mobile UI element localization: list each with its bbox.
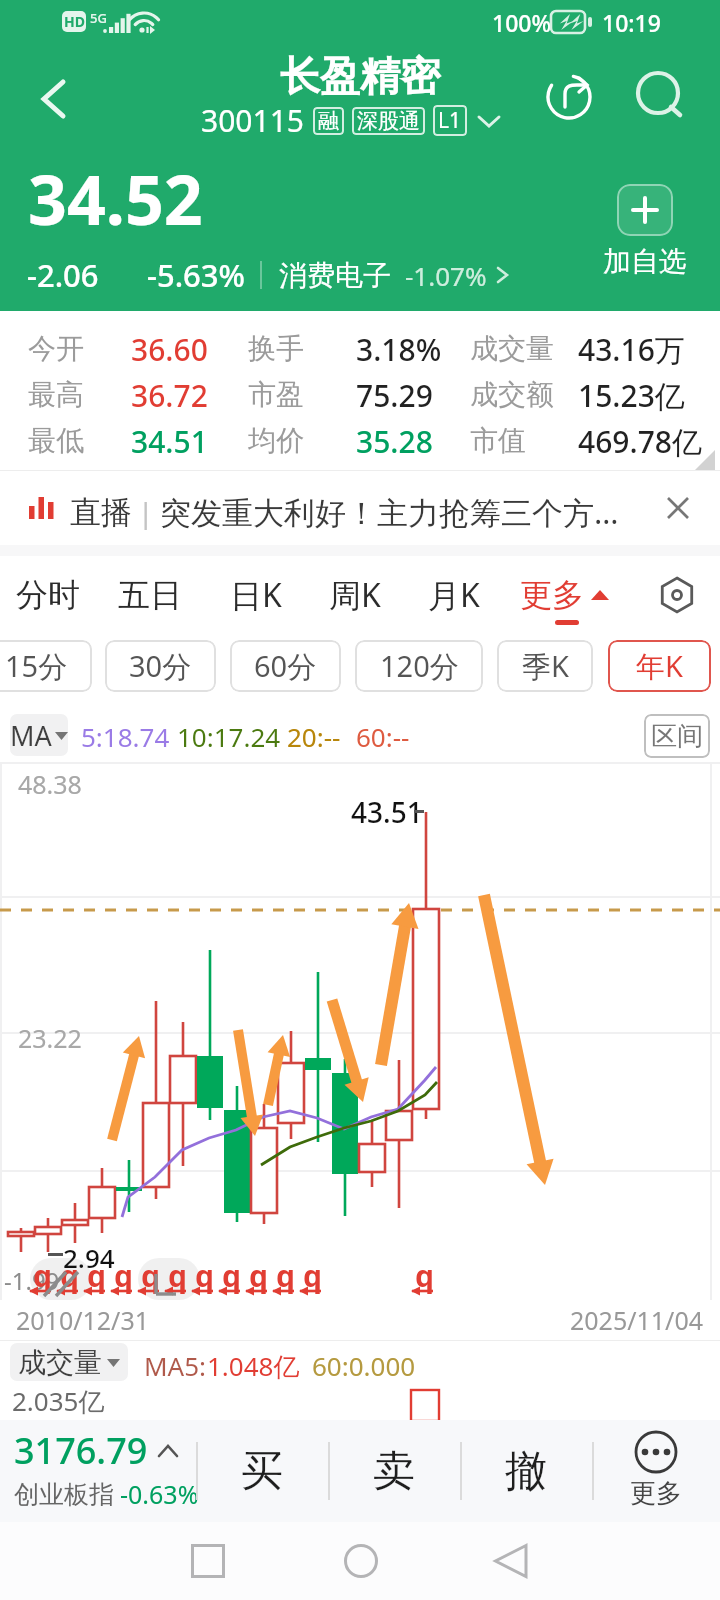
button[interactable]: 直播 (0, 471, 720, 545)
staticText: 今开 (28, 331, 84, 366)
button[interactable]: 周K (310, 556, 400, 634)
button[interactable]: 年K (608, 640, 711, 692)
staticText: 2.035亿 (12, 1383, 105, 1419)
staticText: 月K (428, 573, 480, 617)
button[interactable]: Search (632, 68, 690, 126)
staticText: 43.16万 (578, 329, 685, 370)
staticText: q (168, 1255, 187, 1296)
staticText: 48.38 (18, 767, 82, 801)
button[interactable]: Recent apps (148, 1522, 268, 1600)
staticText: 市值 (470, 423, 526, 458)
button[interactable]: Home (301, 1522, 421, 1600)
staticText: 成交量 (18, 1345, 102, 1380)
button[interactable]: 月K (409, 556, 499, 634)
staticText: q (141, 1255, 160, 1296)
staticText: 更多 (630, 1477, 682, 1510)
button[interactable]: 3176.79 (0, 1420, 196, 1522)
staticText: 最低 (28, 423, 84, 458)
staticText: 融 (318, 108, 339, 134)
staticText: q (195, 1255, 214, 1296)
staticText: L1 (438, 106, 462, 135)
staticText: MA (10, 717, 52, 754)
staticText: q (33, 1255, 52, 1296)
staticText: -5.63% (147, 254, 245, 296)
staticText: q (276, 1255, 295, 1296)
staticText: q (60, 1255, 79, 1296)
staticText: 10:19 (602, 7, 661, 38)
staticText: 36.60 (131, 329, 208, 370)
button[interactable]: 卖 (328, 1420, 460, 1522)
button[interactable]: 更多 (592, 1420, 720, 1522)
staticText: 5G (90, 9, 107, 27)
staticText: 34.52 (28, 152, 203, 245)
staticText: 日K (230, 573, 282, 617)
staticText: 3176.79 (14, 1426, 148, 1475)
staticText: 市盈 (248, 377, 304, 412)
staticText: 突发重大利好！主力抢筹三个方… (160, 491, 619, 533)
staticText: 15.23亿 (578, 375, 685, 416)
staticText: 撤 (505, 1445, 547, 1498)
staticText: -1.99 (4, 1264, 60, 1297)
button[interactable]: Close banner (648, 478, 708, 538)
staticText: q (114, 1255, 133, 1296)
staticText: 消费电子 (279, 258, 391, 293)
staticText: q (87, 1255, 106, 1296)
button[interactable]: 更多 (508, 556, 628, 634)
staticText: 15分 (5, 646, 68, 686)
staticText: q (303, 1255, 322, 1296)
button[interactable]: 季K (497, 640, 593, 692)
staticText: HD (64, 12, 85, 31)
staticText: 年K (636, 646, 683, 686)
staticText: 五日 (118, 575, 182, 615)
button[interactable]: 买 (196, 1420, 328, 1522)
staticText: 成交量 (470, 331, 554, 366)
staticText: 23.22 (18, 1021, 82, 1055)
button[interactable]: 日K (211, 556, 301, 634)
button[interactable]: 分时 (3, 556, 93, 634)
staticText: 100% (492, 7, 552, 38)
staticText: 创业板指 (14, 1479, 114, 1510)
staticText: 换手 (248, 331, 304, 366)
staticText: 300115 (201, 100, 304, 141)
staticText: 35.28 (356, 421, 433, 462)
staticText: 34.51 (131, 421, 208, 462)
button[interactable]: 区间 (644, 714, 710, 758)
staticText: 75.29 (356, 375, 433, 416)
button[interactable]: 60分 (230, 640, 341, 692)
button[interactable]: 30分 (105, 640, 216, 692)
staticText: 60:0.000 (312, 1348, 416, 1383)
button[interactable]: 成交量 (10, 1343, 128, 1381)
button[interactable]: MA (10, 714, 68, 756)
staticText: -1.07% (405, 258, 487, 293)
button[interactable]: Refresh (540, 68, 598, 126)
staticText: 60:-- (356, 719, 410, 754)
button[interactable]: Chart settings (642, 560, 712, 630)
button[interactable]: 15分 (0, 640, 92, 692)
button[interactable]: 撤 (460, 1420, 592, 1522)
staticText: 最高 (28, 377, 84, 412)
staticText: q (415, 1255, 434, 1296)
staticText: 5:18.74 (81, 719, 170, 754)
staticText: 更多 (520, 575, 584, 615)
staticText: 3.18% (356, 329, 442, 370)
button[interactable]: 加自选 (595, 184, 695, 279)
staticText: 均价 (248, 423, 304, 458)
staticText: 买 (241, 1445, 283, 1498)
staticText: 60分 (254, 646, 317, 686)
button[interactable]: 五日 (105, 556, 195, 634)
staticText: 周K (329, 573, 381, 617)
button[interactable]: 120分 (355, 640, 483, 692)
staticText: 成交额 (470, 377, 554, 412)
button[interactable]: 今开 (0, 311, 720, 471)
staticText: q (249, 1255, 268, 1296)
staticText: 469.78亿 (578, 421, 702, 462)
button[interactable]: Back (451, 1522, 571, 1600)
staticText: 直播 (70, 493, 132, 532)
staticText: 卖 (373, 1445, 415, 1498)
staticText: 区间 (651, 720, 703, 753)
staticText: 10:17.24 (177, 719, 281, 754)
staticText: q (222, 1255, 241, 1296)
staticText: 43.51 (351, 793, 423, 831)
button[interactable]: Back (18, 62, 88, 132)
staticText: 30分 (129, 646, 192, 686)
